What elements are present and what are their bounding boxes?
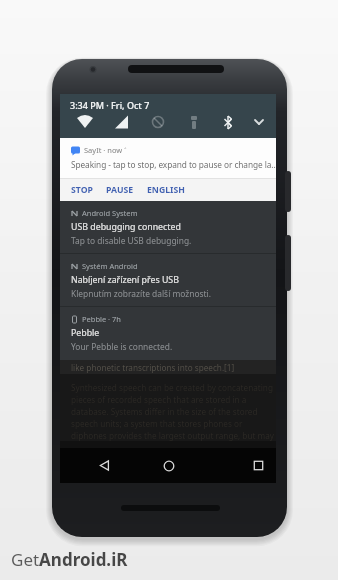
button[interactable]: PAUSE [106, 184, 134, 196]
staticText: Android System [82, 208, 138, 218]
button[interactable] [86, 448, 122, 483]
button[interactable]: Systém Android [60, 254, 276, 306]
staticText: like phonetic transcriptions into speech… [71, 362, 235, 373]
staticText: GetAndroid.iR [11, 548, 128, 571]
button[interactable]: ENGLISH [147, 184, 185, 196]
staticText: Speaking - tap to stop, expand to pause … [71, 159, 276, 170]
staticText: database. Systems differ in the size of … [71, 406, 258, 417]
staticText: PAUSE [106, 184, 134, 196]
button[interactable]: Android System [60, 201, 276, 253]
staticText: Synthesized speech can be created by con… [71, 382, 273, 393]
staticText: ENGLISH [147, 184, 185, 196]
staticText: USB debugging connected [71, 221, 181, 233]
staticText: 3:34 PM · Fri, Oct 7 [70, 99, 150, 111]
staticText: Systém Android [82, 261, 138, 271]
staticText: speech units; a system that stores phone… [71, 418, 243, 429]
button[interactable]: SayIt · now ˄ [60, 138, 276, 201]
staticText: diphones provides the largest output ran… [71, 430, 274, 441]
staticText: Nabíjení zařízení přes USB [71, 274, 179, 286]
staticText: pieces of recorded speech that are store… [71, 394, 247, 405]
button[interactable]: Pebble · 7h [60, 307, 276, 359]
staticText: Tap to disable USB debugging. [71, 235, 192, 246]
staticText: SayIt · now ˄ [84, 145, 127, 155]
staticText: Pebble · 7h [82, 314, 121, 324]
button[interactable] [122, 448, 215, 483]
staticText: STOP [71, 184, 93, 196]
staticText: Klepnutím zobrazíte další možnosti. [71, 288, 211, 299]
button[interactable]: STOP [71, 184, 93, 196]
button[interactable]: 3:34 PM · Fri, Oct 7 [60, 94, 276, 138]
button[interactable] [240, 448, 276, 483]
staticText: Your Pebble is connected. [71, 341, 173, 352]
staticText: Pebble [71, 327, 100, 339]
